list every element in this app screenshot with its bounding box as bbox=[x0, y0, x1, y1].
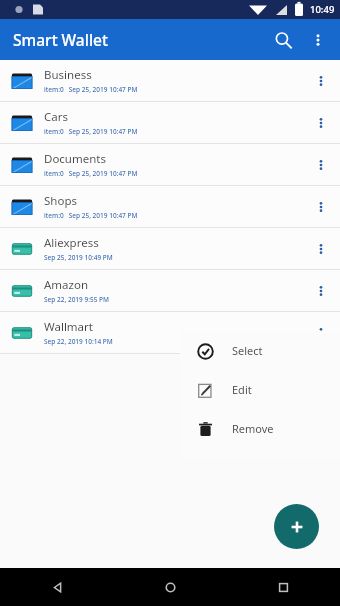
button[interactable]: Business bbox=[0, 60, 340, 102]
button[interactable]: Cars bbox=[0, 102, 340, 144]
staticText: Select bbox=[232, 343, 263, 358]
staticText: Business bbox=[44, 67, 92, 83]
button[interactable]: Back bbox=[0, 568, 114, 606]
staticText: Sep 25, 2019 10:49 PM bbox=[44, 253, 113, 262]
button[interactable]: Edit bbox=[180, 370, 340, 409]
staticText: Remove bbox=[232, 421, 274, 436]
button[interactable]: Item options bbox=[306, 234, 336, 264]
staticText: item:0 Sep 25, 2019 10:47 PM bbox=[44, 127, 138, 136]
button[interactable]: Wallmart bbox=[0, 312, 340, 354]
button[interactable]: Documents bbox=[0, 144, 340, 186]
staticText: item:0 Sep 25, 2019 10:47 PM bbox=[44, 211, 138, 220]
button[interactable]: Item options bbox=[306, 276, 336, 306]
button[interactable]: Item options bbox=[306, 192, 336, 222]
button[interactable]: Item options bbox=[306, 66, 336, 96]
button[interactable]: Item options bbox=[306, 150, 336, 180]
staticText: Wallmart bbox=[44, 319, 93, 335]
staticText: Sep 22, 2019 9:55 PM bbox=[44, 295, 110, 304]
button[interactable]: Recent apps bbox=[227, 568, 340, 606]
staticText: Edit bbox=[232, 382, 252, 397]
staticText: Amazon bbox=[44, 277, 89, 293]
staticText: Aliexpress bbox=[44, 235, 99, 251]
staticText: Smart Wallet bbox=[13, 29, 108, 50]
staticText: Sep 22, 2019 10:14 PM bbox=[44, 337, 113, 346]
button[interactable]: More options bbox=[303, 25, 333, 55]
staticText: item:0 Sep 25, 2019 10:47 PM bbox=[44, 85, 138, 94]
button[interactable]: Search bbox=[266, 23, 300, 57]
staticText: Documents bbox=[44, 151, 106, 167]
button[interactable]: Amazon bbox=[0, 270, 340, 312]
staticText: item:0 Sep 25, 2019 10:47 PM bbox=[44, 169, 138, 178]
staticText: 10:49 bbox=[310, 3, 335, 16]
button[interactable]: Shops bbox=[0, 186, 340, 228]
button[interactable]: Aliexpress bbox=[0, 228, 340, 270]
staticText: Shops bbox=[44, 193, 77, 209]
staticText: Cars bbox=[44, 109, 68, 125]
button[interactable]: Item options bbox=[306, 318, 336, 348]
button[interactable]: Item options bbox=[306, 108, 336, 138]
button[interactable]: Remove bbox=[180, 409, 340, 448]
button[interactable]: Select bbox=[180, 331, 340, 370]
button[interactable]: Home bbox=[114, 568, 227, 606]
button[interactable]: Add bbox=[274, 504, 319, 549]
